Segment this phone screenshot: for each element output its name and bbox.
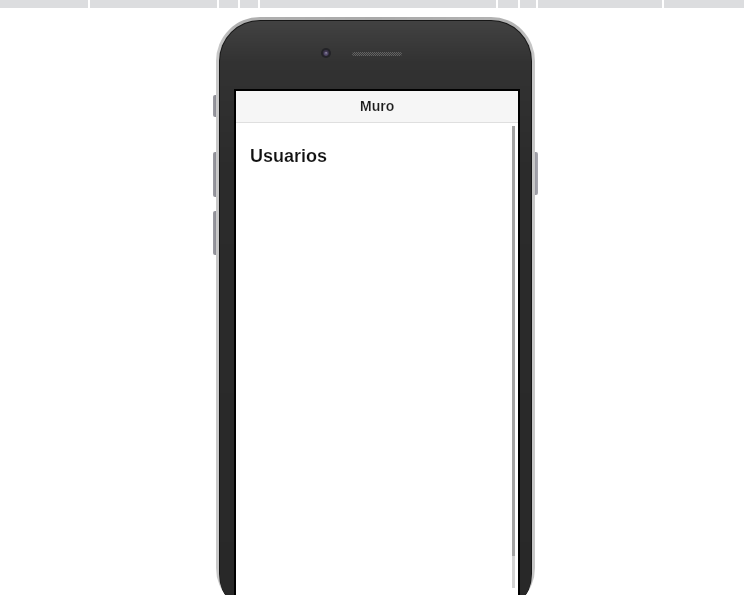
button[interactable]: Silent switch — [213, 95, 218, 117]
button[interactable]: Power — [533, 152, 538, 195]
button[interactable]: Muro — [236, 91, 518, 122]
button[interactable]: Volume up — [213, 152, 218, 197]
staticText: Usuarios — [250, 146, 328, 166]
button[interactable]: Volume down — [213, 211, 218, 255]
staticText: Muro — [360, 98, 395, 114]
